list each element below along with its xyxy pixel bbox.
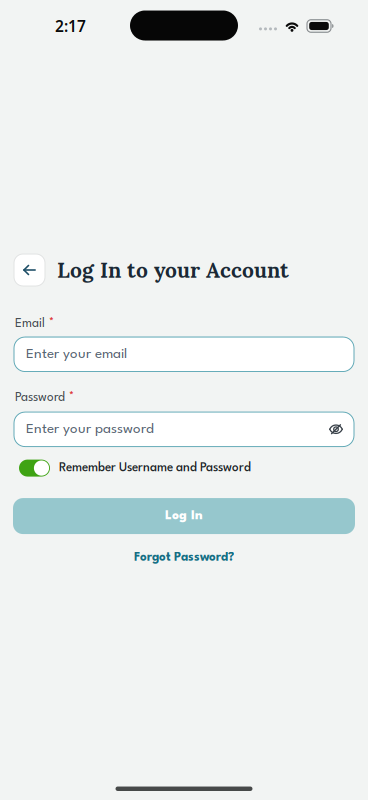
- staticText: *: [69, 390, 74, 401]
- staticText: *: [49, 316, 54, 327]
- staticText: Forgot Password?: [134, 552, 234, 564]
- staticText: Log In to your Account: [57, 257, 289, 283]
- staticText: Enter your password: [26, 422, 154, 436]
- staticText: Enter your email: [26, 347, 127, 361]
- staticText: Password: [15, 392, 65, 404]
- staticText: Log In: [165, 510, 203, 522]
- button[interactable]: Enter your email: [14, 337, 354, 371]
- button[interactable]: Log In: [13, 498, 355, 534]
- button[interactable]: Enter your password: [14, 412, 354, 447]
- button[interactable]: Remember Username and Password: [19, 460, 50, 477]
- staticText: Remember Username and Password: [59, 462, 251, 474]
- button[interactable]: Back: [14, 254, 45, 286]
- staticText: Email: [15, 318, 45, 330]
- staticText: 2:17: [55, 15, 86, 37]
- button[interactable]: Forgot Password?: [134, 552, 234, 564]
